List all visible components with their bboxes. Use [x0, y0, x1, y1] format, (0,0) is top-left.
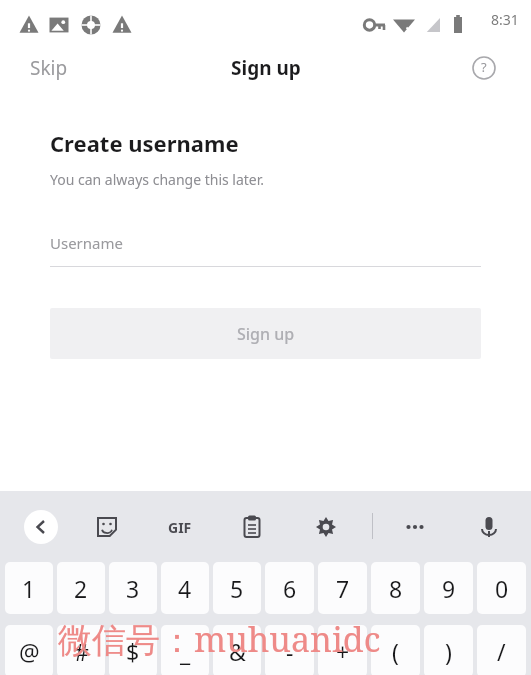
- staticText: @: [19, 636, 40, 667]
- button[interactable]: +: [318, 625, 367, 675]
- button[interactable]: -: [265, 625, 314, 675]
- staticText: Sign up: [231, 55, 301, 81]
- button[interactable]: 2: [57, 562, 105, 614]
- staticText: 8:31: [491, 10, 519, 29]
- staticText: 4: [178, 573, 192, 604]
- button[interactable]: #: [57, 625, 105, 675]
- staticText: 6: [283, 573, 297, 604]
- staticText: _: [180, 636, 191, 667]
- button[interactable]: &: [213, 625, 261, 675]
- staticText: ?: [481, 58, 487, 76]
- staticText: 0: [495, 573, 509, 604]
- staticText: 1: [22, 573, 36, 604]
- staticText: #: [74, 636, 89, 667]
- button[interactable]: 6: [265, 562, 314, 614]
- staticText: 9: [442, 573, 456, 604]
- button[interactable]: 1: [5, 562, 53, 614]
- staticText: GIF: [168, 518, 192, 537]
- staticText: 微信号：muhuanidc: [58, 616, 381, 662]
- button[interactable]: Skip: [20, 49, 78, 87]
- staticText: 7: [336, 573, 350, 604]
- staticText: &: [229, 636, 246, 667]
- staticText: ): [445, 636, 452, 667]
- staticText: (: [392, 636, 399, 667]
- button[interactable]: More options: [398, 510, 432, 544]
- button[interactable]: Clipboard: [235, 510, 269, 544]
- button[interactable]: @: [5, 625, 53, 675]
- staticText: $: [126, 636, 140, 667]
- button[interactable]: Voice input: [472, 510, 506, 544]
- staticText: /: [497, 636, 506, 667]
- button[interactable]: 8: [371, 562, 420, 614]
- button[interactable]: 5: [213, 562, 261, 614]
- button[interactable]: 7: [318, 562, 367, 614]
- button[interactable]: ): [424, 625, 473, 675]
- staticText: Sign up: [237, 323, 295, 345]
- button[interactable]: 9: [424, 562, 473, 614]
- button[interactable]: 3: [109, 562, 157, 614]
- staticText: Create username: [50, 128, 239, 158]
- button[interactable]: $: [109, 625, 157, 675]
- staticText: 5: [230, 573, 244, 604]
- button[interactable]: Settings: [309, 510, 343, 544]
- button[interactable]: Help: [469, 53, 499, 83]
- button[interactable]: Sign up: [50, 308, 481, 359]
- staticText: -: [286, 636, 294, 667]
- button[interactable]: GIF: [158, 510, 202, 544]
- staticText: 2: [74, 573, 88, 604]
- staticText: You can always change this later.: [50, 170, 265, 189]
- staticText: 3: [126, 573, 140, 604]
- button[interactable]: Stickers: [90, 510, 124, 544]
- staticText: 8: [389, 573, 403, 604]
- staticText: Skip: [30, 55, 68, 81]
- staticText: +: [336, 636, 350, 667]
- button[interactable]: (: [371, 625, 420, 675]
- button[interactable]: 4: [161, 562, 209, 614]
- button[interactable]: /: [477, 625, 526, 675]
- button[interactable]: Back: [24, 510, 58, 544]
- button[interactable]: 0: [477, 562, 526, 614]
- button[interactable]: _: [161, 625, 209, 675]
- staticText: Username: [50, 233, 123, 253]
